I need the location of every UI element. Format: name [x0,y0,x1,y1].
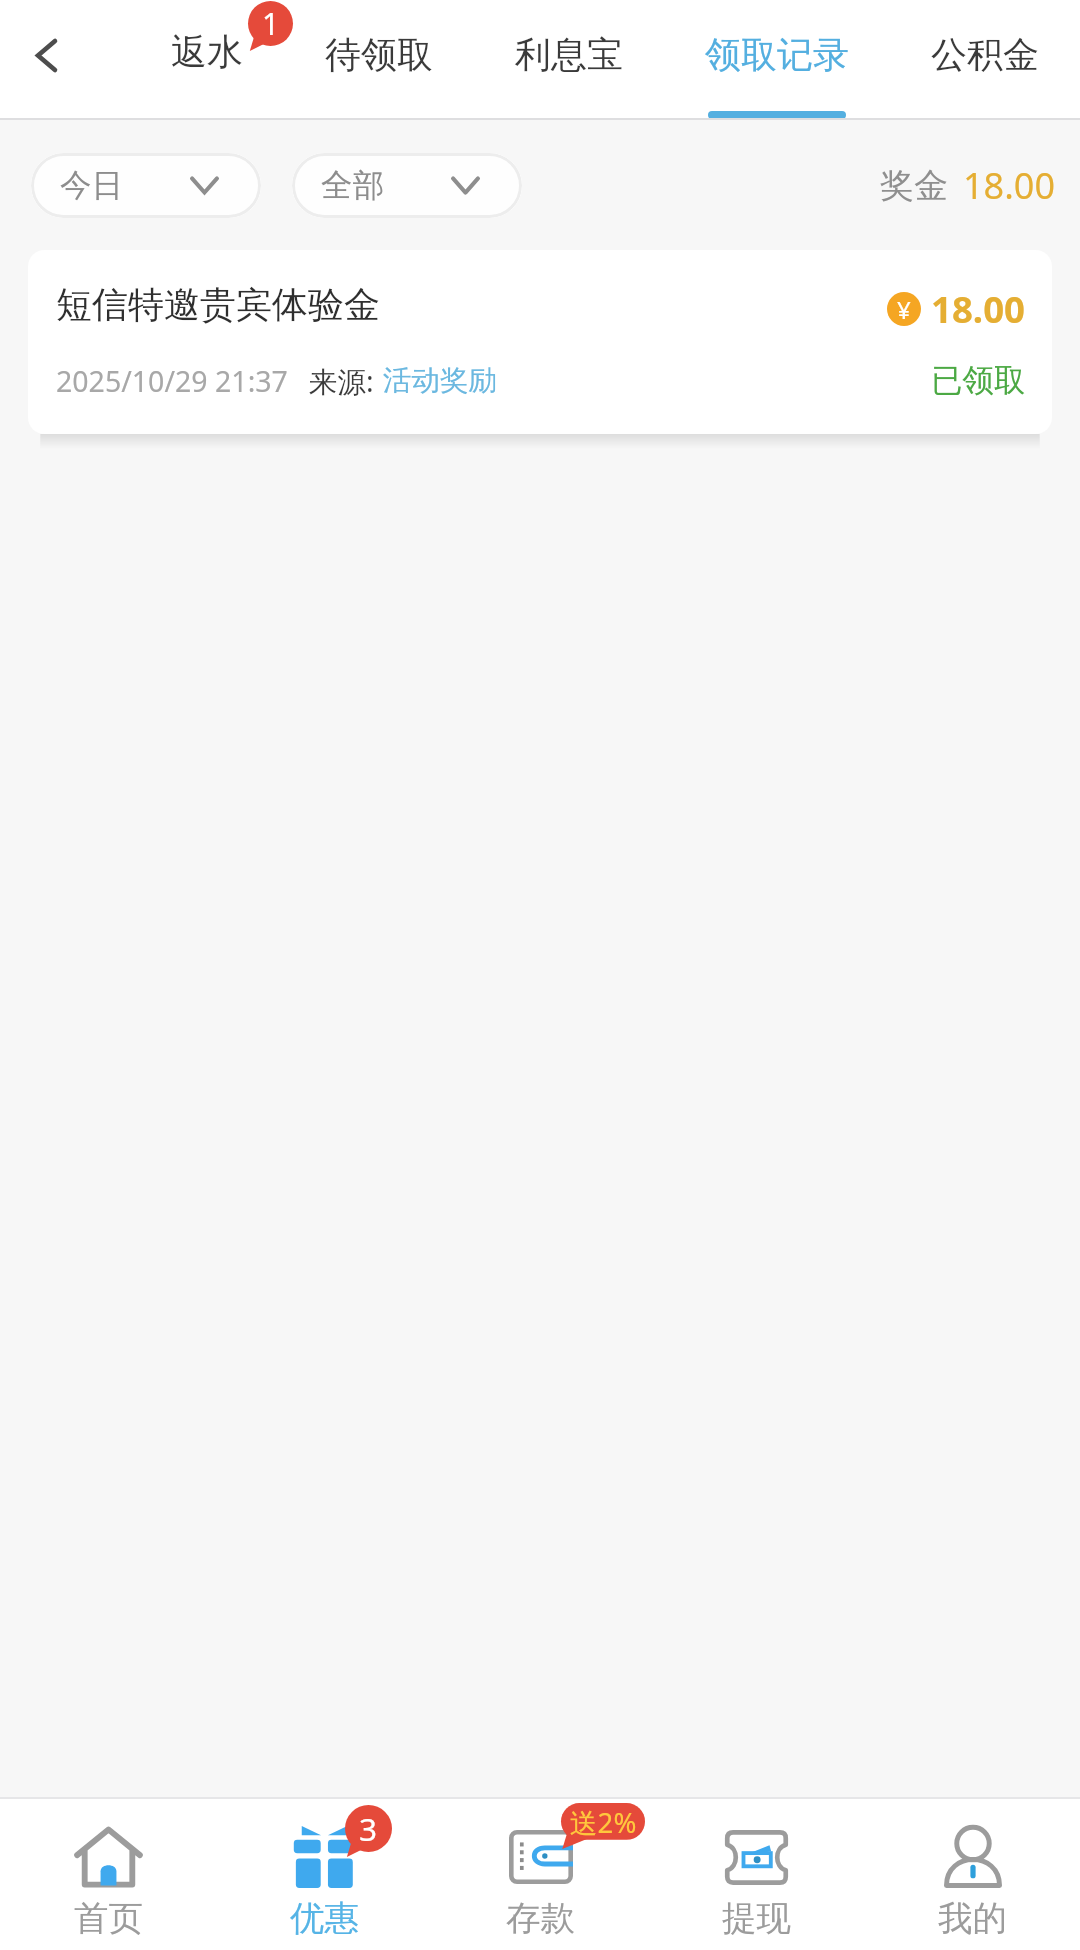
staticText: 来源: [309,362,374,401]
staticText: 今日 [60,166,123,206]
button[interactable]: 3 [216,1799,432,1950]
staticText: 存款 [506,1897,575,1940]
staticText: 我的 [938,1897,1007,1940]
button[interactable]: 我的 [864,1799,1080,1950]
staticText: ¥ [897,293,911,326]
staticText: 1 [262,3,280,44]
staticText: 提现 [722,1897,791,1940]
button[interactable]: 利息宝 [515,0,623,120]
staticText: 送2% [570,1803,637,1840]
button[interactable]: 送2% [432,1799,648,1950]
staticText: 待领取 [325,32,433,77]
staticText: 18.00 [963,161,1056,210]
staticText: 首页 [74,1897,143,1940]
staticText: 短信特邀贵宾体验金 [56,282,380,327]
staticText: 公积金 [931,32,1039,77]
staticText: 已领取 [931,361,1026,401]
staticText: 18.00 [931,284,1026,334]
button[interactable]: 返水 [171,0,243,120]
staticText: 返水 [171,29,243,74]
staticText: 利息宝 [515,32,623,77]
button[interactable]: 全部 [292,153,522,218]
staticText: 优惠 [290,1897,359,1940]
button[interactable]: 短信特邀贵宾体验金 [28,250,1052,434]
button[interactable]: 领取记录 [705,0,849,120]
staticText: 3 [359,1807,378,1850]
staticText: 全部 [321,166,384,206]
button[interactable]: 待领取 [325,0,433,120]
button[interactable]: 公积金 [931,0,1039,120]
button[interactable]: 首页 [0,1799,216,1950]
staticText: 领取记录 [705,32,849,77]
staticText: 活动奖励 [383,363,497,399]
button[interactable]: 今日 [31,153,261,218]
staticText: 2025/10/29 21:37 [56,362,288,401]
staticText: 奖金 [880,164,948,207]
button[interactable]: Back [0,0,93,120]
button[interactable]: 提现 [648,1799,864,1950]
